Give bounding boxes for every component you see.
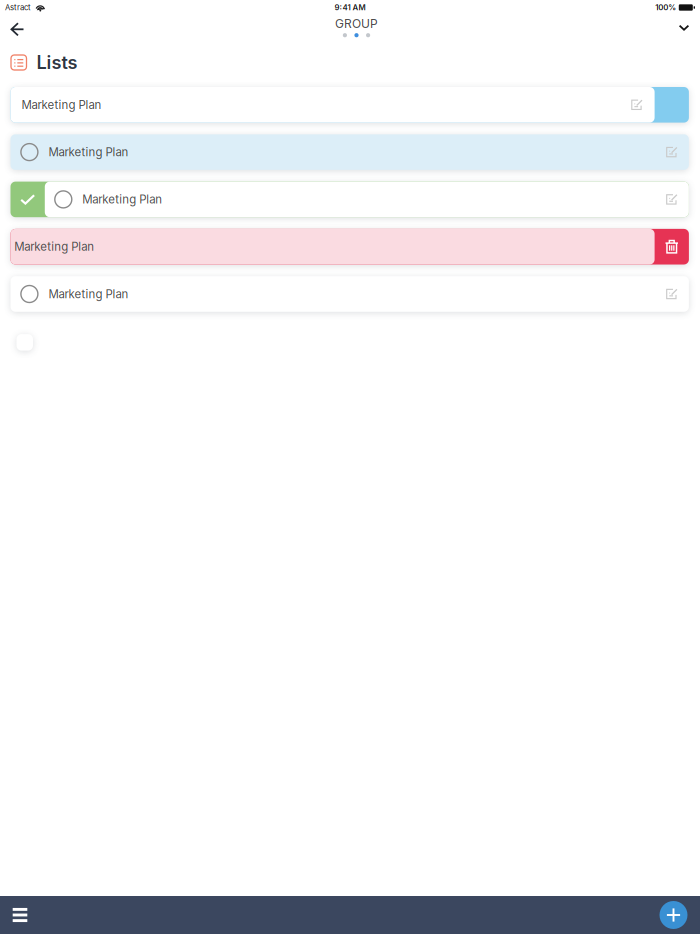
staticText: Marketing Plan [14, 240, 94, 254]
button[interactable]: Show more [667, 12, 700, 44]
button[interactable]: Marketing Plan [10, 182, 689, 217]
staticText: 100% [655, 3, 676, 12]
button[interactable]: Menu [0, 896, 40, 934]
staticText: Marketing Plan [82, 192, 162, 206]
button[interactable]: Marketing Plan [10, 134, 689, 170]
staticText: Astract [5, 3, 31, 12]
staticText: GROUP [335, 16, 378, 31]
staticText: Lists [36, 51, 77, 73]
button[interactable]: Marketing Plan [10, 87, 689, 123]
staticText: Marketing Plan [48, 287, 128, 301]
button[interactable]: Add [647, 896, 700, 934]
button[interactable]: Marketing Plan [10, 229, 689, 264]
staticText: Marketing Plan [48, 145, 128, 159]
button[interactable]: Marketing Plan [10, 276, 689, 312]
staticText: Marketing Plan [22, 98, 102, 112]
staticText: 9:41 AM [334, 3, 365, 12]
button[interactable]: Back [0, 13, 35, 45]
